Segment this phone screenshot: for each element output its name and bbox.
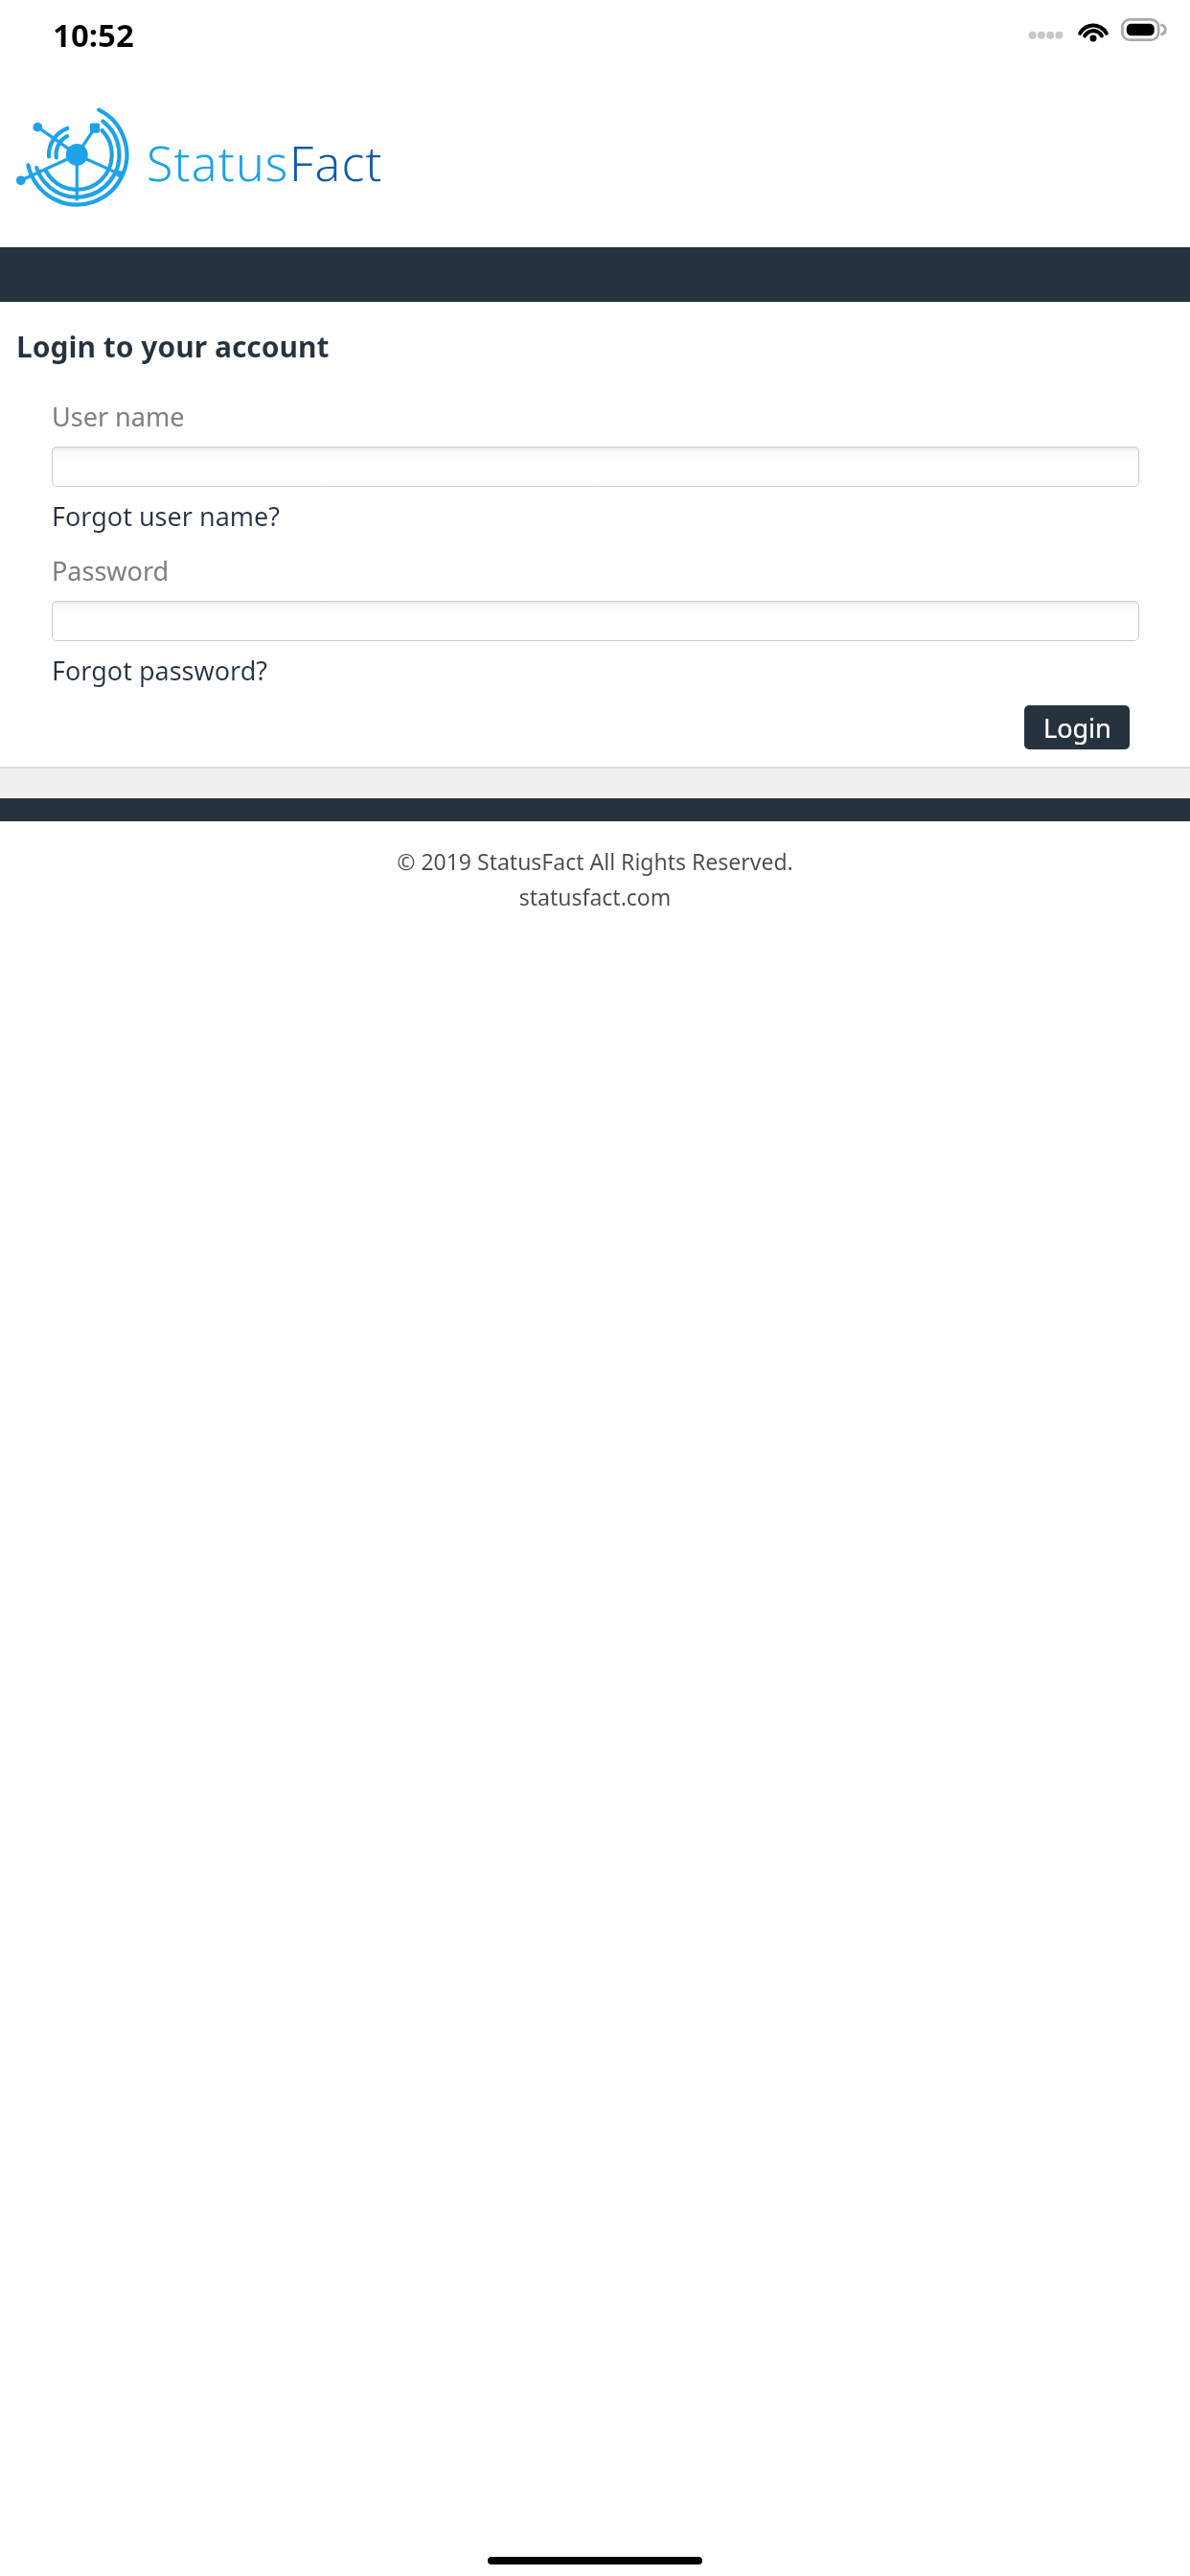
button[interactable]: statusfact.com [0,882,1190,911]
staticText: © 2019 StatusFact All Rights Reserved. [0,846,1190,876]
staticText: Fact [289,130,383,195]
button[interactable]: Login [1024,705,1130,749]
staticText: Login to your account [16,327,330,366]
staticText: Password [52,553,170,588]
button[interactable]: Forgot password? [52,653,268,688]
button[interactable] [52,601,1139,641]
button[interactable] [52,447,1139,487]
staticText: 10:52 [53,13,134,57]
button[interactable]: Forgot user name? [52,498,280,534]
staticText: Status [147,130,289,195]
staticText: User name [52,399,185,434]
staticText: Forgot user name? [52,498,280,534]
staticText: Forgot password? [52,653,268,688]
staticText: Login [1043,710,1111,746]
